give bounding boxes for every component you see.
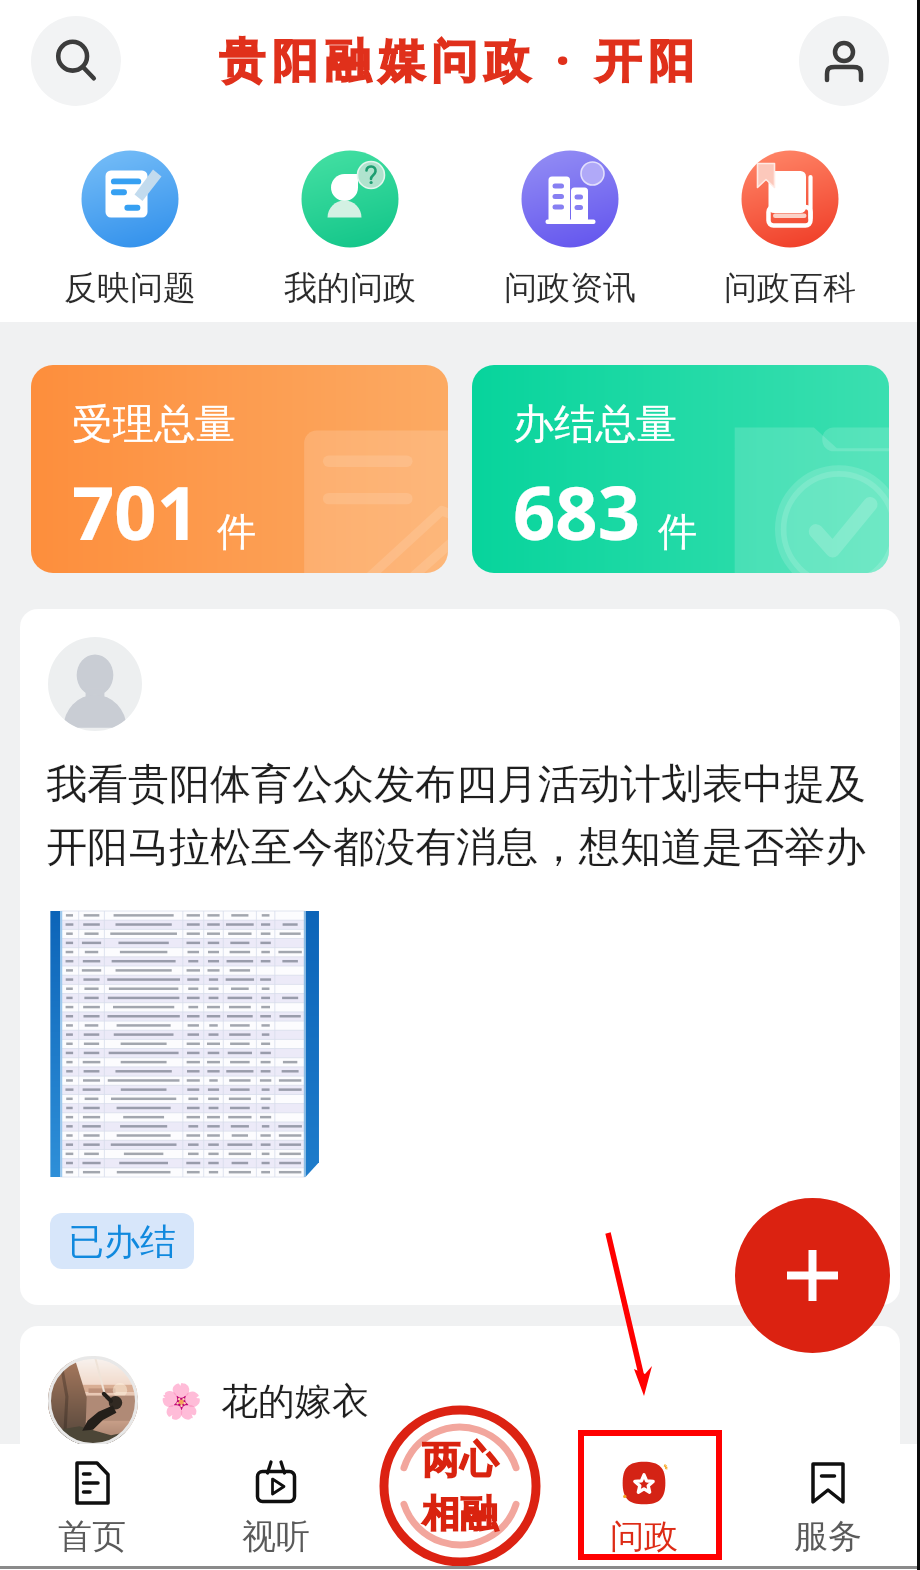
staticText: 我看贵阳体育公众发布四月活动计划表中提及开阳马拉松至今都没有消息，想知道是否举办 [46,759,886,873]
staticText: 相融 [422,1490,498,1538]
staticText: 🌸 [160,1381,203,1421]
button[interactable]: 反映问题 [40,149,220,309]
staticText: 办结总量 [513,399,677,451]
staticText: 视听 [242,1515,310,1558]
staticText: 件 [658,507,697,556]
button[interactable]: New post [735,1198,890,1353]
button[interactable]: 首页 [0,1448,184,1558]
button[interactable]: 问政百科 [700,149,880,309]
button[interactable]: 我看贵阳体育公众发布四月活动计划表中提及开阳马拉松至今都没有消息，想知道是否举办 [20,609,900,1305]
button[interactable]: 服务 [736,1448,920,1558]
button[interactable]: 问政资讯 [480,149,660,309]
staticText: 件 [217,507,256,556]
staticText: 反映问题 [64,267,196,309]
button[interactable]: Search [31,16,121,106]
staticText: 受理总量 [72,399,236,451]
button[interactable]: Profile [799,16,889,106]
button[interactable]: 视听 [184,1448,368,1558]
button[interactable]: 问政 [552,1448,736,1558]
staticText: 问政 [610,1515,678,1558]
staticText: 服务 [794,1515,862,1558]
staticText: 已办结 [68,1219,176,1264]
button[interactable]: 办结总量 [472,365,889,573]
button[interactable]: 两心相融 [377,1403,543,1569]
staticText: 701 [72,461,199,562]
staticText: 问政百科 [724,267,856,309]
staticText: 贵阳融媒问政 · 开阳 [219,28,702,91]
button[interactable]: 🌸 [20,1326,900,1526]
button[interactable]: 受理总量 [31,365,448,573]
staticText: 两心 [422,1436,498,1484]
button[interactable]: 我的问政 [260,149,440,309]
staticText: 我的问政 [284,267,416,309]
button[interactable]: 已办结 [50,1213,194,1269]
staticText: 683 [513,461,640,562]
staticText: 花的嫁衣 [221,1378,369,1425]
staticText: 问政资讯 [504,267,636,309]
staticText: 首页 [58,1515,126,1558]
